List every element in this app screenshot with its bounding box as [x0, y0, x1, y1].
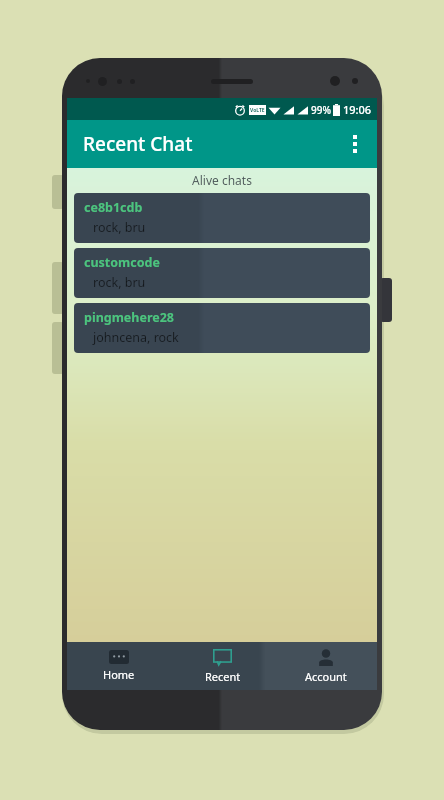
staticText: ce8b1cdb	[84, 199, 143, 216]
staticText: Alive chats	[67, 172, 377, 188]
button[interactable]: Recent	[171, 642, 274, 690]
staticText: pingmehere28	[84, 309, 175, 326]
staticText: Recent Chat	[83, 131, 193, 157]
button[interactable]: Home	[67, 642, 171, 690]
button[interactable]: Account	[274, 642, 377, 690]
staticText: rock, bru	[93, 274, 146, 291]
staticText: rock, bru	[93, 219, 146, 236]
staticText: Account	[305, 669, 347, 684]
staticText: Home	[103, 667, 135, 682]
staticText: VoLTE	[250, 107, 265, 114]
button[interactable]: ce8b1cdb	[74, 193, 370, 243]
button[interactable]: customcode	[74, 248, 370, 298]
button[interactable]: pingmehere28	[74, 303, 370, 353]
button[interactable]: More options	[333, 122, 377, 166]
staticText: 99%	[311, 103, 331, 117]
staticText: Recent	[205, 669, 241, 684]
staticText: 19:06	[343, 102, 372, 117]
staticText: johncena, rock	[93, 329, 179, 346]
staticText: customcode	[84, 254, 160, 271]
